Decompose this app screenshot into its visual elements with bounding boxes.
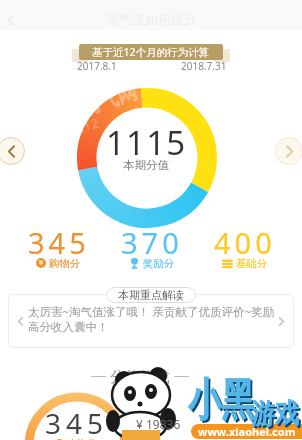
button[interactable]: 400 [198, 229, 291, 269]
staticText: 400 [214, 223, 276, 262]
staticText: 淘气网 [76, 79, 140, 122]
staticText: 345 [45, 404, 109, 440]
button[interactable]: 基于近12个月的行为计算 [92, 45, 210, 59]
staticText: ¥ 19836 [136, 416, 181, 432]
staticText: www.xiaohei.com [198, 424, 296, 439]
button[interactable]: 太厉害~淘气值涨了哦！ 亲贡献了优质评价~奖励 [8, 294, 294, 348]
staticText: 高分收入囊中！ [28, 320, 109, 334]
staticText: 2017.8.1 [77, 59, 117, 73]
button[interactable] [0, 137, 25, 165]
staticText: 太厉害~淘气值涨了哦！ 亲贡献了优质评价~奖励 [28, 304, 275, 320]
staticText: 分值构成 [106, 366, 174, 386]
staticText: 小黑 [188, 372, 254, 428]
staticText: 游戏 [251, 397, 299, 431]
staticText: 370 [121, 223, 183, 262]
button[interactable]: 370 [105, 229, 198, 269]
staticText: 2018.7.31 [181, 59, 227, 73]
staticText: 1115 [106, 120, 187, 165]
staticText: .12 [78, 113, 101, 136]
staticText: 基于近12个月的行为计算 [92, 45, 210, 59]
staticText: 购物分 [46, 256, 81, 270]
staticText: 奖励分 [140, 256, 175, 270]
staticText: 游戏 [253, 399, 301, 433]
button[interactable] [275, 137, 302, 165]
staticText: 淘气值如何提升 [106, 11, 197, 27]
button[interactable]: 345 [12, 229, 105, 269]
button[interactable]: www.xiaohei.com [191, 424, 302, 439]
staticText: 基础分 [233, 256, 268, 270]
staticText: 小黑 [190, 374, 256, 430]
staticText: 本期分值 [123, 158, 169, 172]
staticText: ¥ [39, 258, 44, 268]
button[interactable]: 本期重点解读 [118, 288, 184, 302]
staticText: 购物分 [64, 436, 97, 440]
staticText: 345 [28, 223, 90, 262]
staticText: 本期重点解读 [118, 288, 184, 302]
